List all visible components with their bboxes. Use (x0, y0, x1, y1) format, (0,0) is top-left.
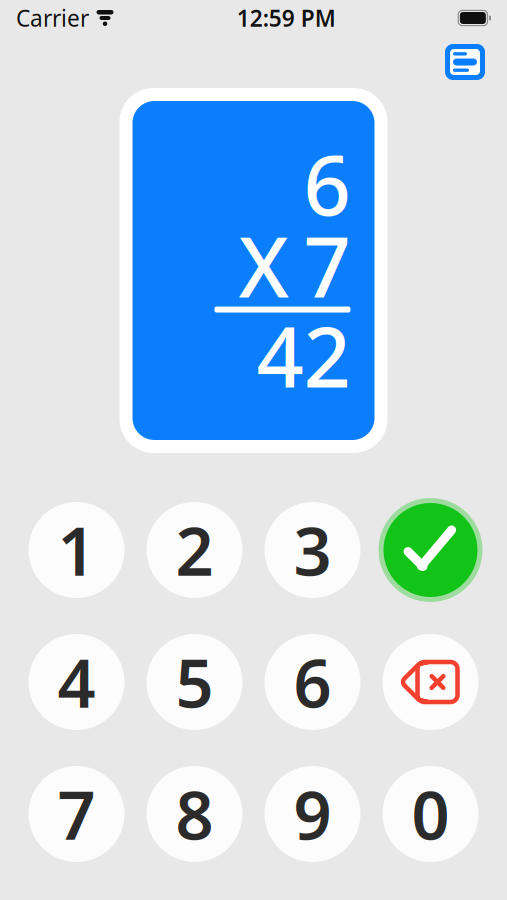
staticText: 42 (256, 301, 350, 410)
button[interactable]: 8 (146, 766, 242, 862)
staticText: 3 (293, 506, 331, 594)
button[interactable]: 7 (28, 766, 124, 862)
staticText: 2 (175, 506, 213, 594)
staticText: 7 (57, 770, 95, 858)
button[interactable]: 4 (28, 634, 124, 730)
staticText: 7 (303, 211, 350, 320)
button[interactable]: Card list (443, 42, 487, 82)
button[interactable]: Delete (382, 634, 478, 730)
button[interactable]: 5 (146, 634, 242, 730)
button[interactable]: 2 (146, 502, 242, 598)
staticText: 0 (411, 770, 449, 858)
staticText: 1 (57, 506, 95, 594)
staticText: 4 (57, 638, 95, 726)
staticText: 6 (303, 129, 350, 238)
staticText: 12:59 PM (237, 3, 336, 33)
button[interactable]: 1 (28, 502, 124, 598)
button[interactable]: Check answer (382, 502, 478, 598)
staticText: 9 (293, 770, 331, 858)
button[interactable]: 6 (264, 634, 360, 730)
staticText: 5 (175, 638, 213, 726)
staticText: 6 (293, 638, 331, 726)
button[interactable]: 3 (264, 502, 360, 598)
staticText: 8 (175, 770, 213, 858)
button[interactable]: 0 (382, 766, 478, 862)
staticText: X (238, 211, 289, 320)
staticText: Carrier (16, 3, 89, 33)
button[interactable]: 9 (264, 766, 360, 862)
